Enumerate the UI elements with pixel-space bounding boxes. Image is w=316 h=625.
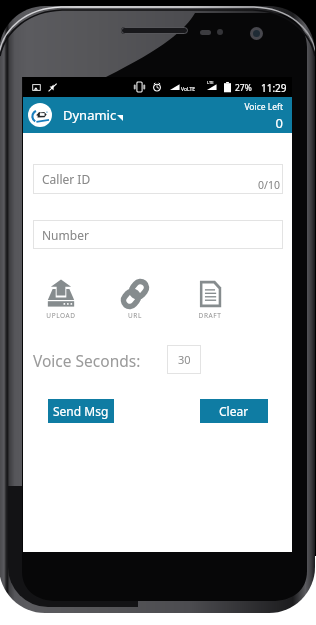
- button[interactable]: 30: [167, 345, 201, 374]
- staticText: DRAFT: [186, 311, 234, 320]
- staticText: Send Msg: [53, 403, 109, 419]
- staticText: UPLOAD: [37, 311, 85, 320]
- staticText: Voice Seconds:: [33, 350, 141, 371]
- staticText: VoLTE: [181, 86, 196, 93]
- button[interactable]: URL: [111, 279, 159, 320]
- button[interactable]: Dynamic: [63, 106, 123, 124]
- staticText: URL: [111, 311, 159, 320]
- staticText: 30: [178, 352, 191, 367]
- staticText: 0: [275, 114, 283, 132]
- staticText: 0/10: [258, 178, 280, 192]
- button[interactable]: Send Msg: [48, 399, 114, 423]
- staticText: Dynamic: [63, 106, 117, 124]
- staticText: Number: [42, 227, 89, 243]
- button[interactable]: Caller ID: [33, 164, 283, 194]
- staticText: LTE: [207, 80, 214, 85]
- button[interactable]: DRAFT: [186, 279, 234, 320]
- button[interactable]: UPLOAD: [37, 279, 85, 320]
- button[interactable]: App logo: [28, 103, 52, 127]
- staticText: Voice Left: [244, 101, 283, 113]
- staticText: 27%: [235, 82, 252, 94]
- staticText: Caller ID: [42, 171, 91, 187]
- button[interactable]: Number: [33, 220, 283, 249]
- staticText: 11:29: [261, 81, 287, 95]
- staticText: Clear: [219, 403, 249, 419]
- button[interactable]: Clear: [200, 399, 268, 423]
